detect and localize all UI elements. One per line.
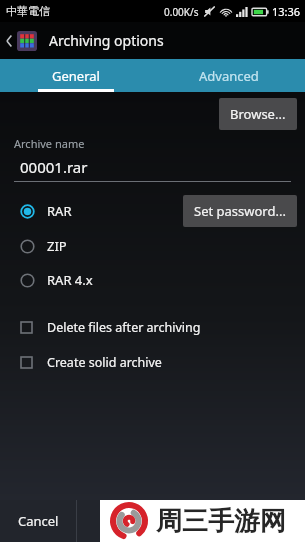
staticText: 周三手游网	[156, 505, 286, 538]
button[interactable]: Proceed	[77, 500, 305, 542]
button[interactable]: 00001.rar	[14, 157, 291, 182]
staticText: Advanced	[199, 67, 259, 85]
button[interactable]: Browse...	[219, 98, 297, 130]
staticText: General	[52, 67, 100, 85]
button[interactable]: RAR 4.x	[0, 267, 305, 293]
staticText: Archive name	[14, 136, 85, 151]
staticText: 0.00K/s	[164, 5, 199, 19]
button[interactable]: Cancel	[0, 500, 76, 542]
button[interactable]: Back	[0, 22, 41, 59]
button[interactable]: Create solid archive	[0, 350, 305, 375]
staticText: Set password...	[194, 202, 286, 220]
staticText: 中華電信	[6, 4, 50, 18]
staticText: Cancel	[18, 512, 59, 530]
button[interactable]: Delete files after archiving	[0, 315, 305, 340]
staticText: Delete files after archiving	[47, 319, 201, 336]
staticText: Archiving options	[49, 31, 164, 50]
staticText: RAR 4.x	[47, 271, 93, 289]
staticText: 13:36	[272, 4, 301, 19]
button[interactable]: RAR	[0, 198, 305, 224]
button[interactable]: Advanced	[152, 59, 305, 92]
staticText: Browse...	[230, 105, 286, 123]
staticText: RAR	[47, 202, 72, 220]
staticText: ZIP	[47, 237, 67, 255]
button[interactable]: Set password...	[183, 195, 297, 227]
staticText: Proceed	[166, 512, 216, 530]
staticText: 00001.rar	[20, 157, 88, 177]
staticText: Create solid archive	[47, 354, 162, 371]
button[interactable]: General	[0, 59, 152, 92]
button[interactable]: ZIP	[0, 233, 305, 259]
